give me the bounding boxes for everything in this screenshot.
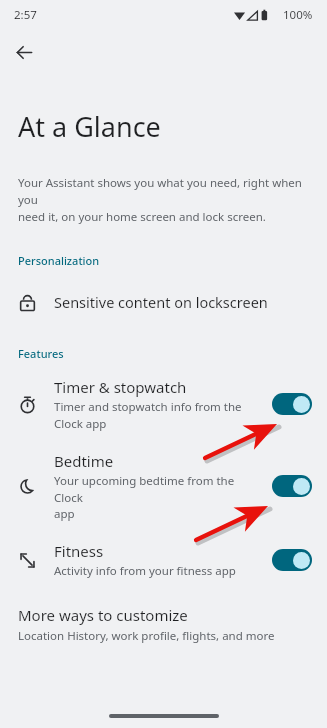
button[interactable]: Toggle xyxy=(272,475,312,497)
staticText: 2:57 xyxy=(14,7,37,23)
staticText: Your Assistant shows you what you need, … xyxy=(18,175,315,225)
staticText: Activity info from your fitness app xyxy=(54,563,236,579)
staticText: More ways to customize xyxy=(18,605,188,625)
button[interactable]: Sensitive content on lockscreen xyxy=(0,280,327,324)
staticText: Fitness xyxy=(54,541,104,561)
staticText: Your upcoming bedtime from the Clock app xyxy=(54,473,264,521)
button[interactable]: Toggle xyxy=(272,393,312,415)
staticText: At a Glance xyxy=(18,108,161,145)
button[interactable]: More ways to customize xyxy=(0,605,327,644)
button[interactable]: Toggle xyxy=(272,549,312,571)
button[interactable]: Bedtime xyxy=(0,447,327,525)
staticText: Location History, work profile, flights,… xyxy=(18,628,275,644)
button[interactable]: Timer & stopwatch xyxy=(0,373,327,435)
button[interactable]: Back xyxy=(9,37,39,67)
staticText: Personalization xyxy=(18,253,100,268)
staticText: Timer and stopwatch info from the Clock … xyxy=(54,399,242,431)
staticText: Bedtime xyxy=(54,451,114,471)
staticText: Sensitive content on lockscreen xyxy=(54,292,268,312)
staticText: Timer & stopwatch xyxy=(54,377,187,397)
button[interactable]: Fitness xyxy=(0,537,327,583)
staticText: Features xyxy=(18,346,64,361)
staticText: 100% xyxy=(283,7,313,23)
